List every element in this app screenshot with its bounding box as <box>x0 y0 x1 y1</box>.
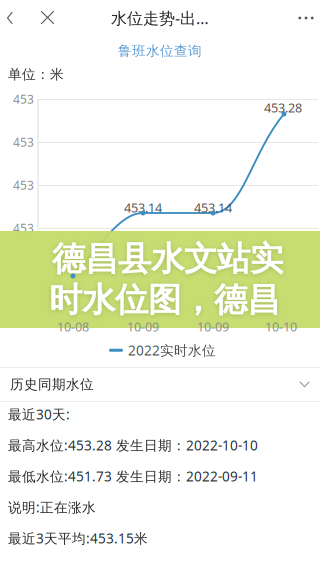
button[interactable]: Close <box>32 0 62 34</box>
button[interactable]: Back <box>0 1 23 35</box>
staticText: 453.14 <box>124 199 162 216</box>
staticText: 10-09 <box>127 318 159 335</box>
staticText: 水位走势-出… <box>111 7 209 29</box>
staticText: 2022实时水位 <box>128 341 216 359</box>
staticText: 最高水位:453.28 发生日期：2022-10-10 <box>8 436 258 454</box>
staticText: 453.28 <box>264 99 302 116</box>
button[interactable]: More options <box>292 1 320 35</box>
staticText: 单位：米 <box>8 66 64 83</box>
button[interactable]: 鲁班水位查询 <box>0 42 320 60</box>
staticText: 10-08 <box>57 318 89 335</box>
staticText: 453 <box>13 177 34 193</box>
staticText: 453 <box>13 220 34 236</box>
staticText: 最近3天平均:453.15米 <box>8 529 148 547</box>
staticText: 10-09 <box>197 318 229 335</box>
button[interactable]: 历史同期水位 <box>0 368 320 401</box>
staticText: 10-10 <box>265 318 297 335</box>
staticText: 最近30天: <box>8 405 70 423</box>
staticText: 历史同期水位 <box>10 376 94 393</box>
staticText: 453 <box>13 134 34 150</box>
staticText: 453.14 <box>194 199 232 216</box>
staticText: 最低水位:451.73 发生日期：2022-09-11 <box>8 467 258 485</box>
staticText: 鲁班水位查询 <box>118 42 202 59</box>
staticText: 德昌县水文站实 <box>52 238 283 280</box>
staticText: 453 <box>13 91 34 107</box>
staticText: 时水位图，德昌 <box>49 279 280 321</box>
staticText: 说明:正在涨水 <box>8 498 96 516</box>
